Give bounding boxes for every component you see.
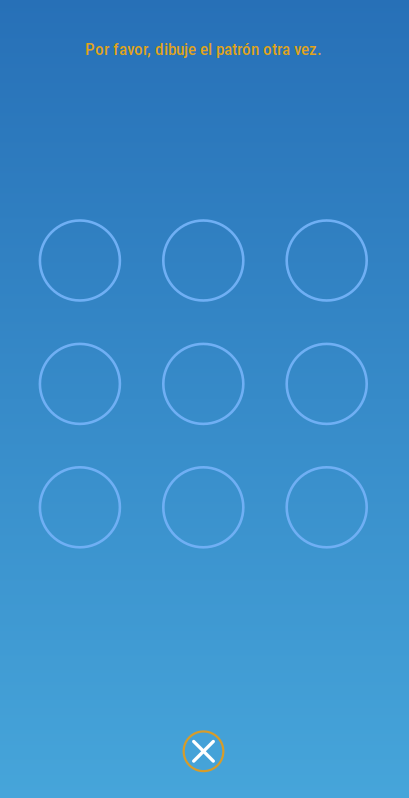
button[interactable]: Pattern dot 8 <box>163 467 243 547</box>
button[interactable]: Pattern dot 7 <box>40 467 120 547</box>
button[interactable]: Pattern dot 5 <box>163 344 243 424</box>
button[interactable]: Pattern dot 2 <box>163 220 243 300</box>
button[interactable]: Pattern dot 3 <box>287 220 367 300</box>
button[interactable]: Cancel <box>171 719 235 783</box>
button[interactable]: Pattern dot 4 <box>40 344 120 424</box>
button[interactable]: Pattern dot 9 <box>287 467 367 547</box>
button[interactable]: Pattern dot 6 <box>287 344 367 424</box>
button[interactable]: Pattern dot 1 <box>40 220 120 300</box>
staticText: Por favor, dibuje el patrón otra vez. <box>85 39 322 59</box>
